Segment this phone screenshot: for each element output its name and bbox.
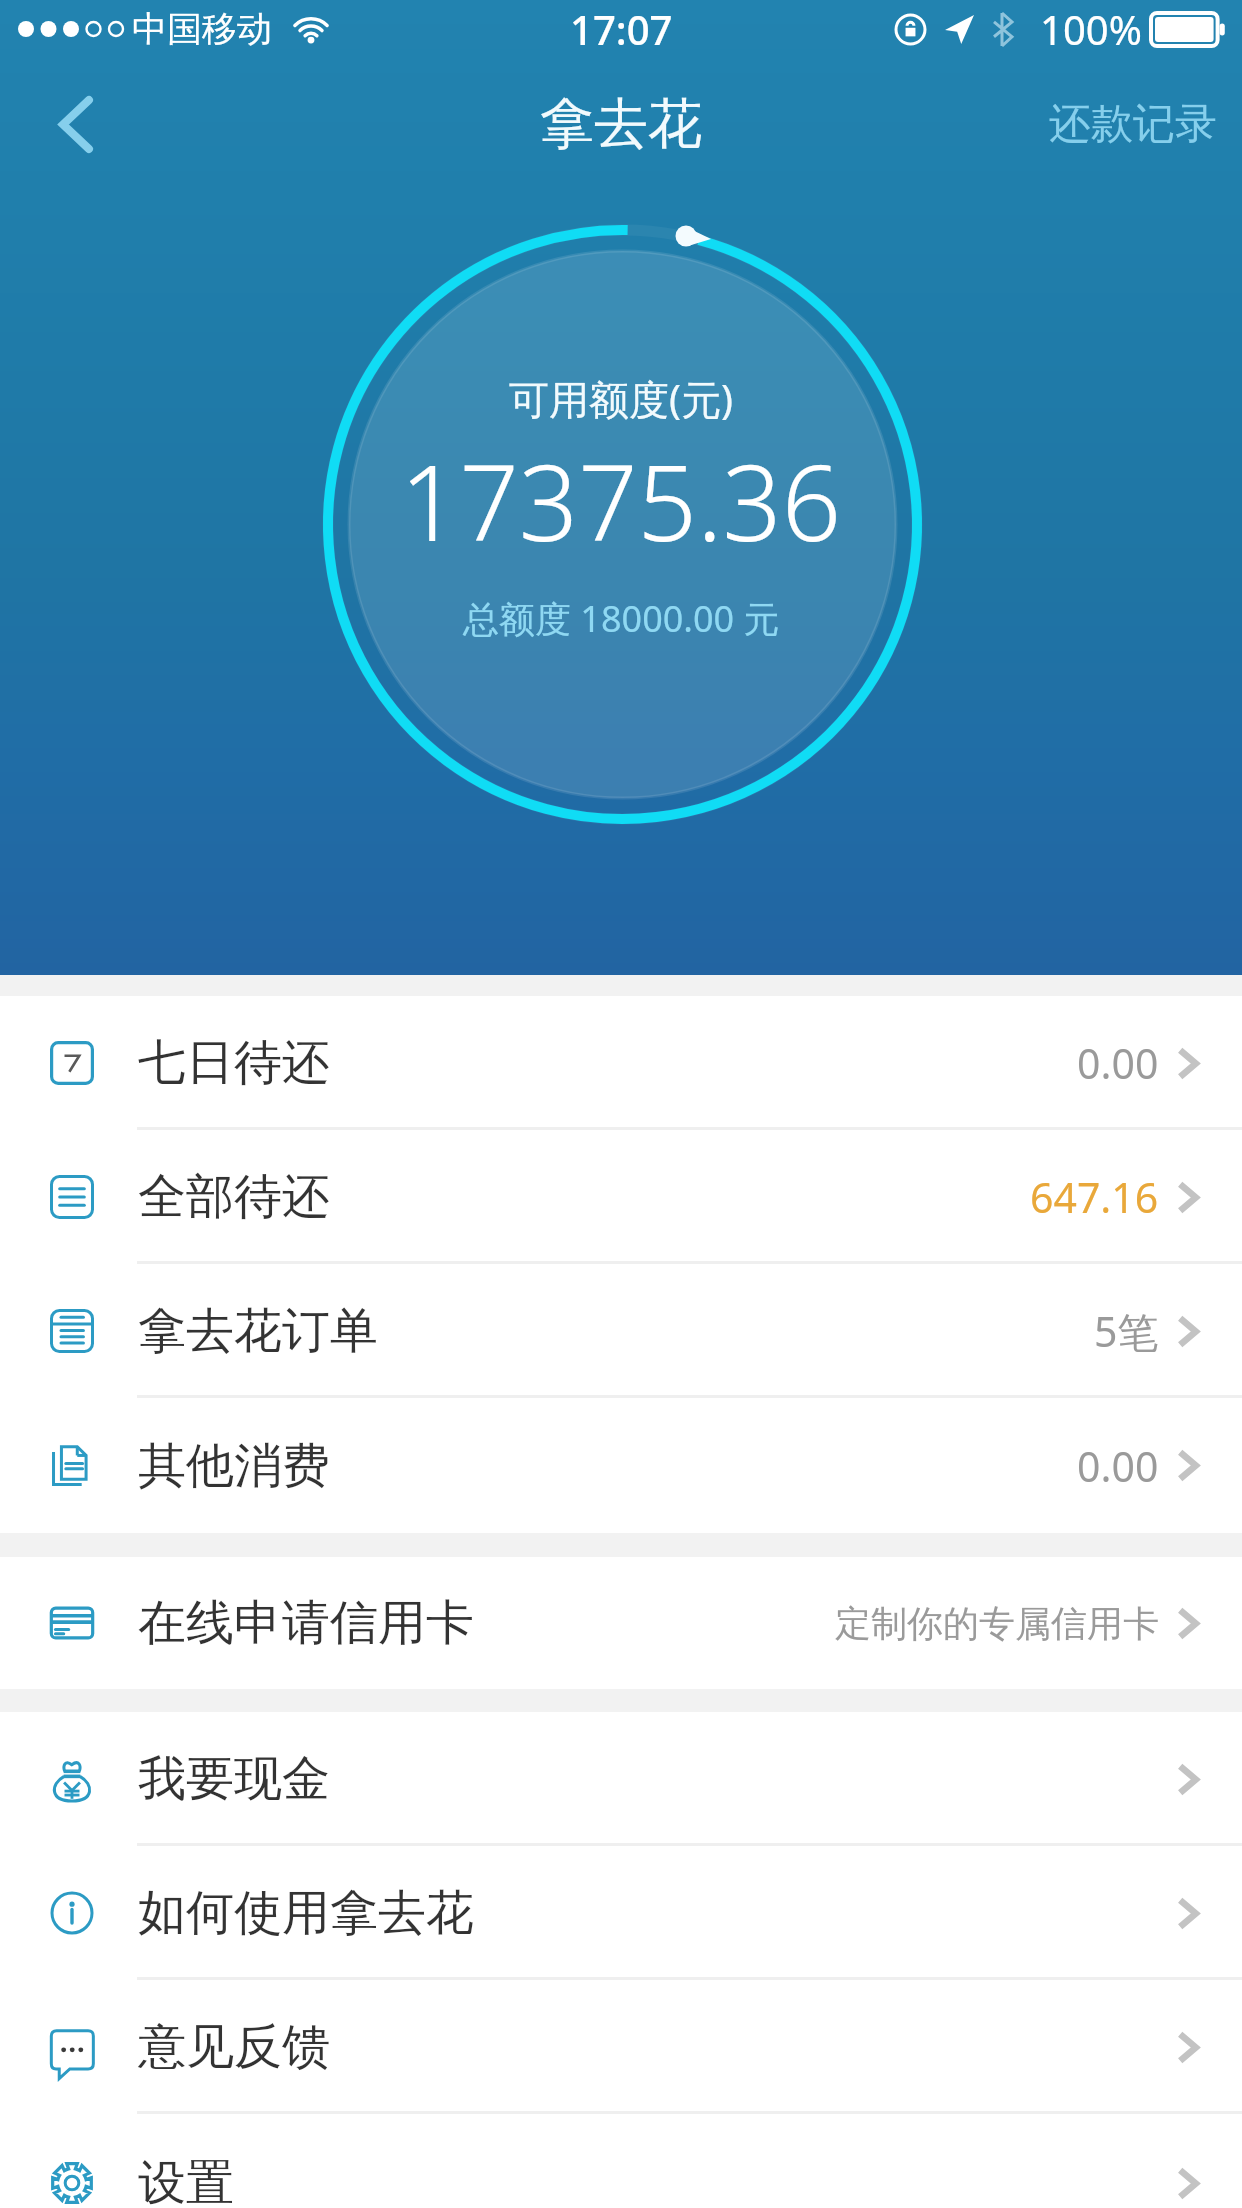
staticText: 17:07 (570, 2, 673, 56)
button[interactable]: 设置 (0, 2114, 1242, 2208)
staticText: 在线申请信用卡 (138, 1593, 474, 1653)
staticText: 如何使用拿去花 (138, 1883, 474, 1943)
button[interactable]: 我要现金 (0, 1712, 1242, 1846)
staticText: 拿去花 (540, 90, 702, 158)
staticText: 我要现金 (138, 1749, 330, 1809)
button[interactable]: 如何使用拿去花 (0, 1846, 1242, 1980)
staticText: 总额度 18000.00 元 (463, 594, 780, 643)
staticText: 17375.36 (400, 430, 842, 572)
staticText: 0.00 (1077, 1035, 1159, 1091)
staticText: 100% (1040, 2, 1142, 56)
staticText: 中国移动 (132, 7, 272, 51)
staticText: 拿去花订单 (138, 1301, 378, 1361)
button[interactable]: 其他消费 (0, 1398, 1242, 1533)
staticText: 0.00 (1077, 1438, 1159, 1494)
button[interactable]: 七日待还 (0, 996, 1242, 1130)
staticText: 全部待还 (138, 1167, 330, 1227)
button[interactable]: 拿去花订单 (0, 1264, 1242, 1398)
staticText: 意见反馈 (138, 2017, 330, 2077)
staticText: 647.16 (1030, 1169, 1159, 1225)
button[interactable]: 在线申请信用卡 (0, 1557, 1242, 1689)
staticText: 设置 (138, 2153, 234, 2208)
button[interactable]: 全部待还 (0, 1130, 1242, 1264)
staticText: 还款记录 (1049, 98, 1217, 151)
staticText: 其他消费 (138, 1436, 330, 1496)
button[interactable]: Back (0, 60, 152, 188)
staticText: 定制你的专属信用卡 (835, 1601, 1159, 1646)
button[interactable]: 意见反馈 (0, 1980, 1242, 2114)
staticText: 5笔 (1094, 1303, 1159, 1359)
button[interactable]: 还款记录 (1049, 60, 1242, 188)
staticText: 可用额度(元) (509, 371, 733, 426)
staticText: 七日待还 (138, 1033, 330, 1093)
